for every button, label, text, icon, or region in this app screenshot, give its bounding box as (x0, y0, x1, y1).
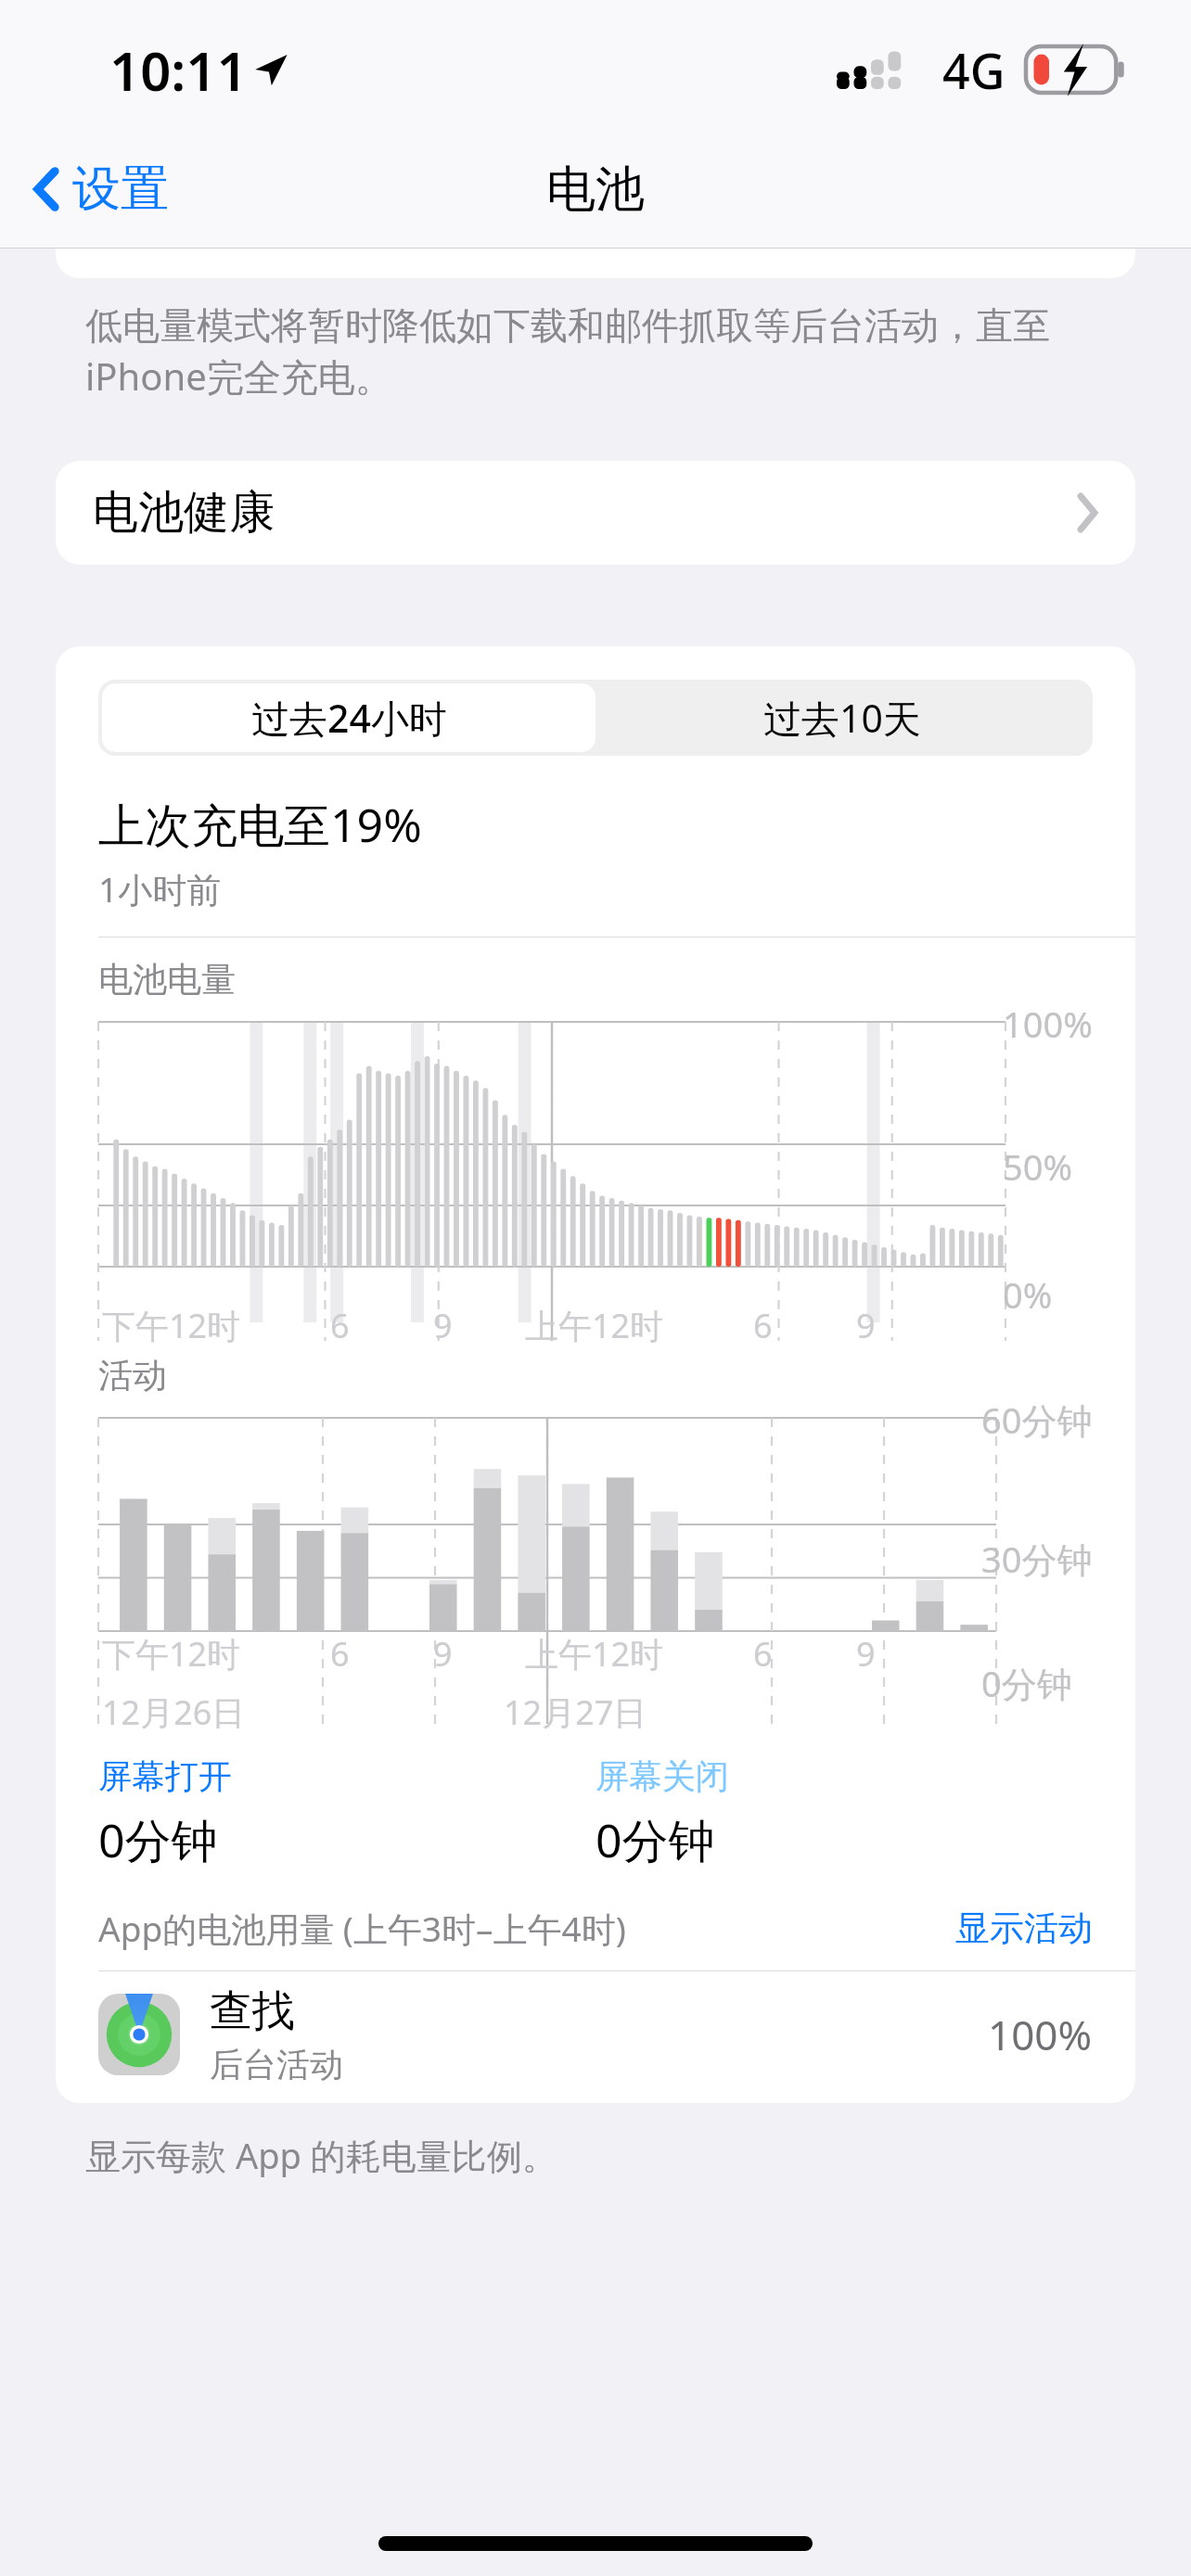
staticText: 电池 (546, 159, 645, 221)
staticText: 过去10天 (763, 692, 921, 744)
staticText: 9 (856, 1303, 876, 1348)
staticText: 上次充电至19% (98, 793, 422, 856)
staticText: 后台活动 (210, 2044, 343, 2085)
staticText: 10:11 (109, 33, 248, 107)
staticText: 电池健康 (93, 484, 275, 542)
staticText: 9 (433, 1303, 453, 1348)
staticText: 60分钟 (981, 1396, 1093, 1444)
staticText: 12月27日 (504, 1690, 647, 1735)
staticText: 低电量模式将暂时降低如下载和邮件抓取等后台活动，直至 iPhone完全充电。 (85, 302, 1050, 402)
staticText: App的电池用量 (上午3时–上午4时) (98, 1905, 955, 1952)
staticText: 显示每款 App 的耗电量比例。 (85, 2131, 557, 2179)
staticText: 屏幕打开 (98, 1755, 232, 1797)
staticText: 0% (1003, 1270, 1053, 1319)
staticText: 活动 (98, 1354, 167, 1397)
staticText: 9 (856, 1631, 876, 1677)
staticText: 过去24小时 (251, 692, 447, 744)
button[interactable]: 查找 (56, 1971, 1135, 2098)
staticText: 12月26日 (102, 1690, 246, 1735)
staticText: 显示活动 (955, 1906, 1093, 1950)
staticText: 上午12时 (525, 1303, 664, 1348)
staticText: 1小时前 (98, 865, 222, 912)
button[interactable]: 设置 (24, 147, 180, 231)
staticText: 0分钟 (98, 1808, 218, 1871)
staticText: 屏幕关闭 (595, 1755, 729, 1797)
staticText: 设置 (72, 159, 169, 220)
staticText: 查找 (210, 1984, 295, 2038)
staticText: 6 (753, 1303, 773, 1348)
staticText: 下午12时 (102, 1303, 241, 1348)
staticText: 下午12时 (102, 1631, 241, 1677)
staticText: 6 (330, 1631, 350, 1677)
staticText: 0分钟 (981, 1659, 1072, 1707)
staticText: 0分钟 (595, 1808, 715, 1871)
staticText: 6 (330, 1303, 350, 1348)
staticText: 4G (942, 37, 1005, 103)
button[interactable]: 显示活动 (955, 1906, 1093, 1950)
button[interactable]: 过去24小时 (102, 683, 595, 752)
staticText: 上午12时 (525, 1631, 664, 1677)
staticText: 50% (1003, 1142, 1073, 1191)
staticText: 9 (433, 1631, 453, 1677)
button[interactable]: 电池健康 (56, 461, 1135, 565)
staticText: 电池电量 (98, 958, 236, 1001)
staticText: 100% (1003, 1000, 1093, 1048)
staticText: 30分钟 (981, 1535, 1093, 1583)
staticText: 6 (753, 1631, 773, 1677)
button[interactable]: 过去10天 (595, 683, 1089, 752)
staticText: 100% (988, 2007, 1093, 2062)
